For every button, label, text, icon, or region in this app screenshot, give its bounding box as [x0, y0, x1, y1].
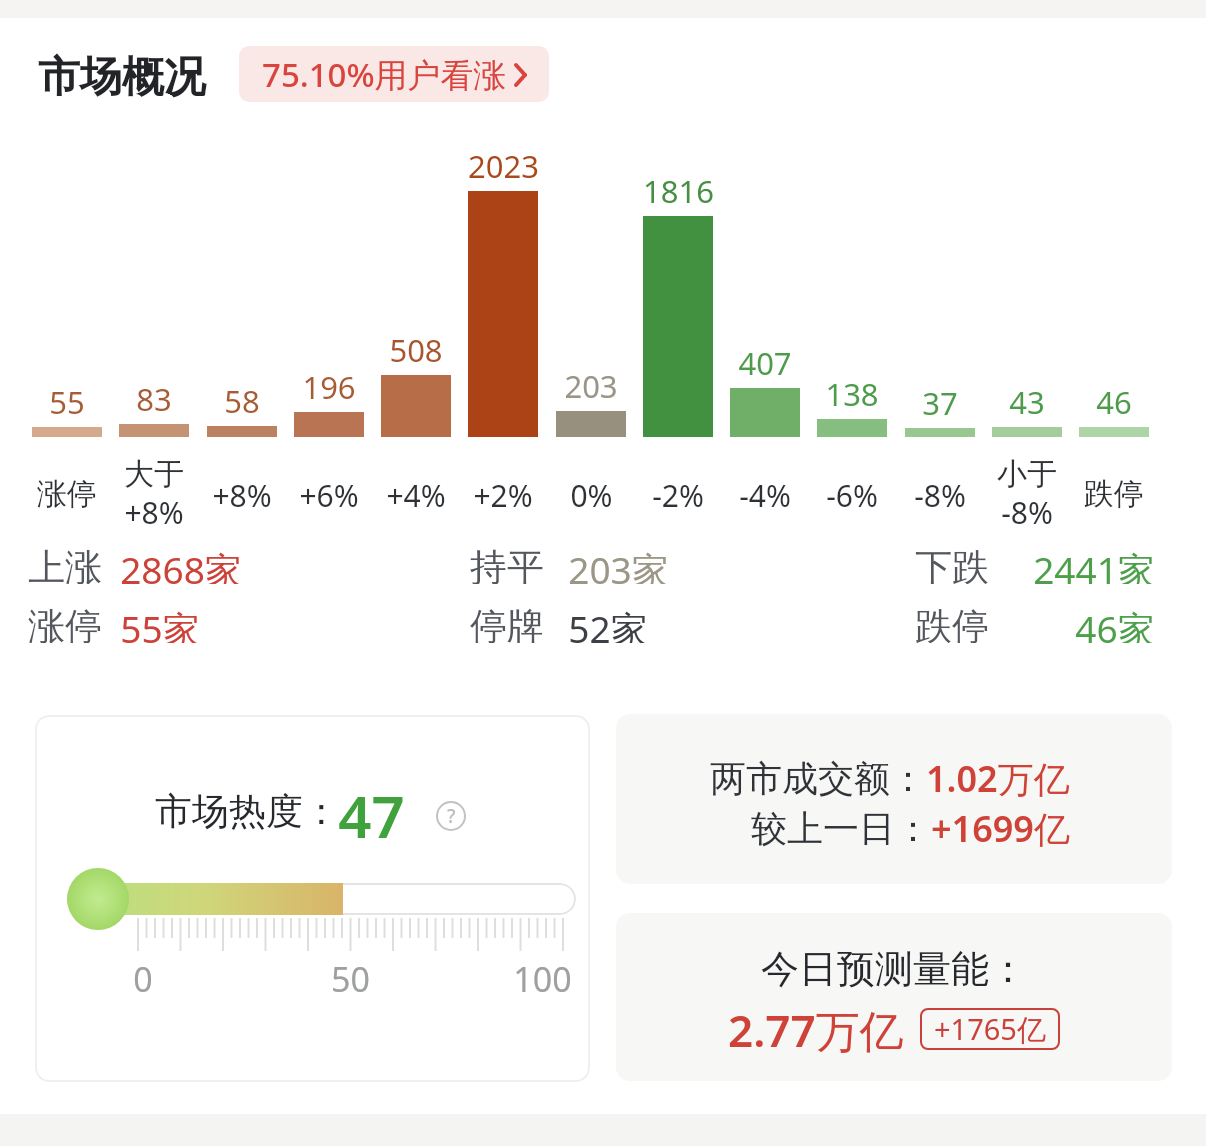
staticText: 今日预测量能： [761, 945, 1027, 993]
staticText: 2868家 [120, 544, 242, 584]
staticText: 58 [224, 380, 260, 418]
staticText: 较上一日： [751, 806, 931, 851]
staticText: 43 [1009, 381, 1045, 419]
staticText: 涨停 [28, 603, 102, 643]
staticText: 市场热度： [155, 788, 340, 835]
staticText: +1765亿 [934, 1009, 1046, 1049]
button[interactable] [616, 913, 1172, 1081]
staticText: 涨停 [37, 475, 97, 513]
staticText: 46家 [1075, 603, 1155, 643]
staticText: 两市成交额： [710, 756, 926, 801]
button[interactable]: ? [436, 801, 466, 831]
staticText: 50 [331, 956, 370, 996]
staticText: ? [447, 803, 456, 829]
staticText: 0 [133, 956, 153, 996]
staticText: 大于 +8% [124, 455, 184, 533]
staticText: -2% [652, 475, 704, 513]
staticText: 196 [302, 366, 356, 404]
button[interactable]: 75.10%用户看涨 [239, 46, 549, 102]
staticText: +1699亿 [931, 804, 1070, 853]
staticText: 持平 [470, 544, 544, 584]
staticText: -8% [914, 475, 966, 513]
staticText: 138 [825, 373, 879, 411]
staticText: 停牌 [470, 603, 544, 643]
staticText: 小于 -8% [997, 455, 1057, 533]
staticText: 1.02万亿 [926, 754, 1070, 803]
staticText: 37 [922, 382, 958, 420]
staticText: 跌停 [1084, 475, 1144, 513]
staticText: +8% [212, 475, 272, 513]
staticText: +6% [299, 475, 359, 513]
staticText: 100 [513, 956, 572, 996]
staticText: 407 [738, 342, 792, 380]
staticText: 52家 [568, 603, 648, 643]
staticText: 2441家 [1033, 544, 1155, 584]
staticText: 203家 [568, 544, 669, 584]
staticText: 47 [338, 776, 405, 846]
staticText: 46 [1096, 381, 1132, 419]
staticText: 203 [564, 365, 618, 403]
staticText: 75.10%用户看涨 [262, 52, 507, 97]
staticText: 下跌 [915, 544, 989, 584]
staticText: 55 [49, 381, 85, 419]
staticText: 市场概况 [38, 51, 206, 104]
staticText: 83 [136, 378, 172, 416]
staticText: +2% [473, 475, 533, 513]
staticText: 跌停 [915, 603, 989, 643]
staticText: -4% [739, 475, 791, 513]
staticText: 508 [389, 329, 443, 367]
staticText: 55家 [120, 603, 200, 643]
staticText: 1816 [643, 170, 714, 208]
button[interactable] [616, 714, 1172, 884]
staticText: 上涨 [28, 544, 102, 584]
staticText: 0% [570, 475, 613, 513]
staticText: +4% [386, 475, 446, 513]
staticText: 2.77万亿 [728, 1000, 904, 1058]
staticText: 2023 [468, 145, 539, 183]
staticText: -6% [826, 475, 878, 513]
